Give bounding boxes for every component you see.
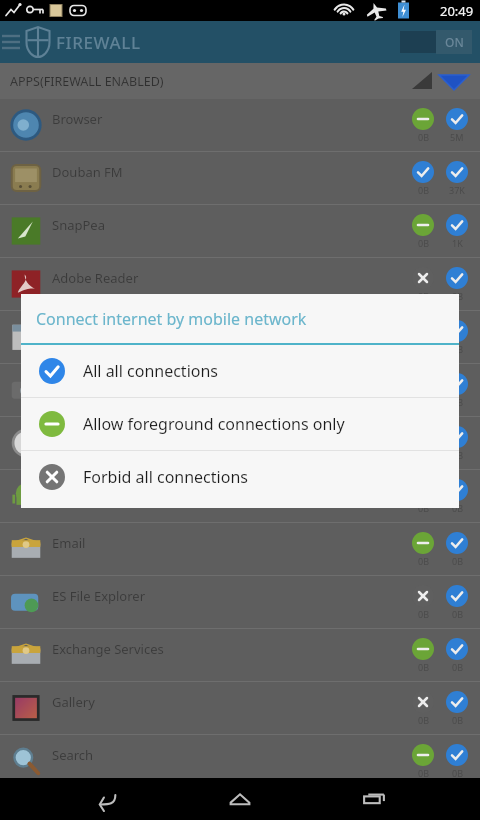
button[interactable]: Gallery	[0, 682, 480, 734]
button[interactable]: Adobe Reader	[0, 258, 480, 310]
button[interactable]: Back	[78, 778, 134, 820]
button[interactable]: Allow foreground connections only	[21, 398, 459, 450]
staticText: 0B	[452, 661, 463, 673]
staticText: 0B	[452, 290, 463, 302]
button[interactable]: Firewall enabled toggle	[400, 29, 472, 55]
staticText: 0B	[452, 343, 463, 355]
staticText: 0B	[452, 767, 463, 779]
staticText: 0B	[418, 131, 429, 143]
staticText: Calendar	[52, 322, 107, 340]
button[interactable]: 5M	[444, 108, 470, 143]
staticText: APPS(FIREWALL ENABLED)	[10, 73, 164, 90]
button[interactable]: 0B	[410, 267, 436, 302]
staticText: 0B	[452, 555, 463, 567]
staticText: ES File Explorer	[52, 587, 146, 605]
button[interactable]: 0B	[444, 426, 470, 461]
button[interactable]: Calendar	[0, 311, 480, 363]
staticText: 0B	[418, 343, 429, 355]
staticText: Gallery	[52, 693, 95, 711]
staticText: 5M	[450, 131, 464, 143]
button[interactable]: Forbid all connections	[21, 451, 459, 503]
button[interactable]: Open navigation drawer	[0, 21, 22, 63]
button[interactable]: Recent apps	[346, 778, 402, 820]
button[interactable]: Exchange Services	[0, 629, 480, 681]
staticText: 0B	[452, 396, 463, 408]
button[interactable]: 0B	[444, 479, 470, 514]
button[interactable]: 0B	[444, 320, 470, 355]
staticText: 0B	[418, 290, 429, 302]
button[interactable]: 0B	[410, 479, 436, 514]
button[interactable]: Camera	[0, 364, 480, 416]
staticText: 37K	[449, 184, 465, 196]
staticText: 0B	[452, 449, 463, 461]
button[interactable]: Douban FM	[0, 152, 480, 204]
button[interactable]: 0B	[410, 426, 436, 461]
button[interactable]: Email	[0, 523, 480, 575]
staticText: 0B	[418, 184, 429, 196]
staticText: 0B	[418, 608, 429, 620]
staticText: Douban FM	[52, 163, 123, 181]
button[interactable]: 0B	[410, 585, 436, 620]
staticText: FIREWALL	[56, 31, 141, 54]
button[interactable]: 0B	[444, 585, 470, 620]
staticText: Downloads	[52, 481, 121, 499]
staticText: 0B	[418, 237, 429, 249]
button[interactable]: 1K	[444, 214, 470, 249]
button[interactable]: 0B	[444, 532, 470, 567]
button[interactable]: SnapPea	[0, 205, 480, 257]
button[interactable]: 0B	[444, 638, 470, 673]
staticText: 1K	[452, 237, 463, 249]
staticText: 0B	[452, 608, 463, 620]
staticText: Allow foreground connections only	[83, 413, 345, 435]
button[interactable]: 0B	[444, 373, 470, 408]
staticText: Clock	[52, 428, 85, 446]
staticText: 0B	[418, 767, 429, 779]
staticText: All all connections	[83, 360, 219, 382]
button[interactable]: 0B	[410, 638, 436, 673]
button[interactable]: 0B	[410, 108, 436, 143]
staticText: ON	[445, 34, 464, 50]
staticText: 0B	[452, 502, 463, 514]
staticText: Exchange Services	[52, 640, 164, 658]
button[interactable]: ES File Explorer	[0, 576, 480, 628]
staticText: 0B	[418, 449, 429, 461]
staticText: 0B	[452, 714, 463, 726]
button[interactable]: 0B	[410, 744, 436, 779]
button[interactable]: Search	[0, 735, 480, 787]
staticText: Adobe Reader	[52, 269, 139, 287]
staticText: 0B	[418, 396, 429, 408]
staticText: Connect internet by mobile network	[36, 308, 307, 330]
staticText: Email	[52, 534, 86, 552]
staticText: 0B	[418, 661, 429, 673]
button[interactable]: 37K	[444, 161, 470, 196]
button[interactable]: Clock	[0, 417, 480, 469]
staticText: Camera	[52, 375, 100, 393]
staticText: 0B	[418, 502, 429, 514]
staticText: SnapPea	[52, 216, 105, 234]
staticText: 0B	[418, 714, 429, 726]
button[interactable]: 0B	[410, 320, 436, 355]
button[interactable]: 0B	[444, 267, 470, 302]
button[interactable]: 0B	[444, 691, 470, 726]
staticText: 0B	[418, 555, 429, 567]
button[interactable]: 0B	[444, 744, 470, 779]
button[interactable]: 0B	[410, 214, 436, 249]
staticText: Forbid all connections	[83, 466, 248, 488]
button[interactable]: Home	[212, 778, 268, 820]
button[interactable]: Browser	[0, 99, 480, 151]
button[interactable]: 0B	[410, 161, 436, 196]
button[interactable]: 0B	[410, 532, 436, 567]
button[interactable]: Downloads	[0, 470, 480, 522]
staticText: 20:49	[440, 2, 474, 20]
button[interactable]: 0B	[410, 691, 436, 726]
staticText: Browser	[52, 110, 103, 128]
button[interactable]: 0B	[410, 373, 436, 408]
button[interactable]: All all connections	[21, 345, 459, 397]
staticText: Search	[52, 746, 94, 764]
